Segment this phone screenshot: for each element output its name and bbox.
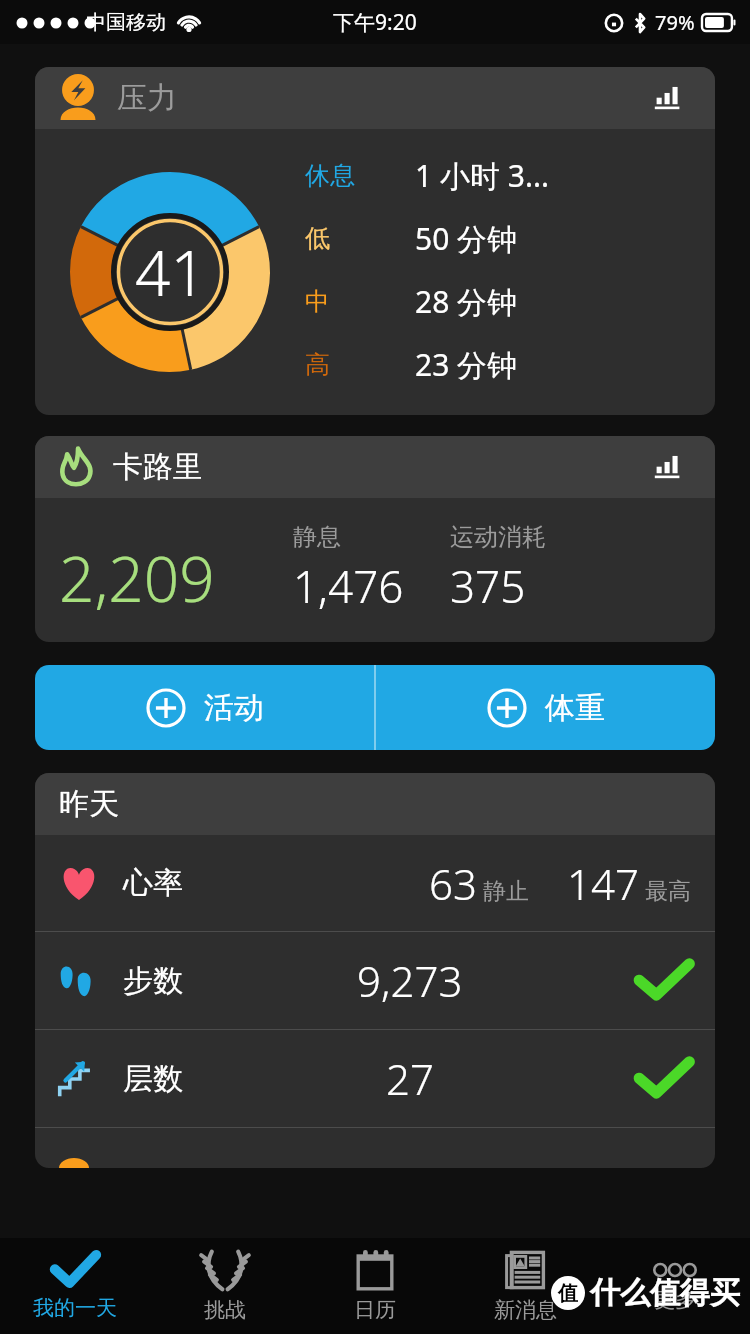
button[interactable]: 新消息 — [450, 1238, 600, 1334]
button[interactable]: Chart — [645, 75, 691, 121]
staticText: 高 — [305, 349, 330, 380]
staticText: 步数 — [123, 962, 183, 1000]
button[interactable]: 我的一天 — [0, 1238, 150, 1334]
staticText: 卡路里 — [113, 448, 203, 486]
staticText: 休息 — [305, 160, 355, 191]
staticText: 更多 — [654, 1287, 696, 1313]
staticText: 挑战 — [204, 1297, 246, 1323]
staticText: 运动消耗 — [450, 522, 546, 552]
staticText: 2,209 — [59, 536, 215, 620]
staticText: 体重 — [545, 689, 605, 727]
staticText: 中 — [305, 286, 330, 317]
button[interactable]: Chart — [645, 444, 691, 490]
button[interactable]: 日历 — [300, 1238, 450, 1334]
staticText: 9,273 — [357, 952, 463, 1009]
staticText: 压力 — [117, 79, 177, 117]
button[interactable]: 体重 — [376, 665, 715, 750]
staticText: 下午9:20 — [333, 8, 417, 37]
button[interactable]: 压力 — [35, 67, 715, 415]
button[interactable]: 步数 — [35, 932, 715, 1029]
staticText: 低 — [305, 223, 330, 254]
staticText: 1,476 — [293, 556, 404, 616]
staticText: 41 — [135, 230, 206, 314]
staticText: 147 — [567, 855, 639, 912]
staticText: 79% — [655, 9, 695, 36]
staticText: 层数 — [123, 1060, 183, 1098]
staticText: 活动 — [204, 689, 264, 727]
staticText: 日历 — [354, 1297, 396, 1323]
staticText: 静息 — [293, 522, 341, 552]
button[interactable]: 挑战 — [150, 1238, 300, 1334]
staticText: 什么值得买 — [590, 1274, 740, 1312]
staticText: 375 — [450, 556, 526, 616]
staticText: 28 分钟 — [415, 281, 518, 322]
staticText: 心率 — [123, 864, 183, 902]
staticText: 63 — [429, 855, 477, 912]
staticText: 昨天 — [59, 785, 119, 823]
button[interactable]: 层数 — [35, 1030, 715, 1127]
button[interactable]: 卡路里 — [35, 436, 715, 642]
staticText: 27 — [386, 1050, 434, 1107]
staticText: 中国移动 — [86, 10, 166, 35]
staticText: 值 — [558, 1281, 578, 1306]
staticText: 静止 — [483, 877, 529, 906]
staticText: 新消息 — [494, 1297, 557, 1323]
staticText: 1 小时 3... — [415, 155, 550, 196]
button[interactable]: 活动 — [35, 665, 374, 750]
staticText: 我的一天 — [33, 1295, 117, 1321]
staticText: 50 分钟 — [415, 218, 518, 259]
staticText: 23 分钟 — [415, 344, 518, 385]
staticText: 最高 — [645, 877, 691, 906]
button[interactable]: 更多 — [600, 1238, 750, 1334]
button[interactable]: 心率 — [35, 835, 715, 931]
